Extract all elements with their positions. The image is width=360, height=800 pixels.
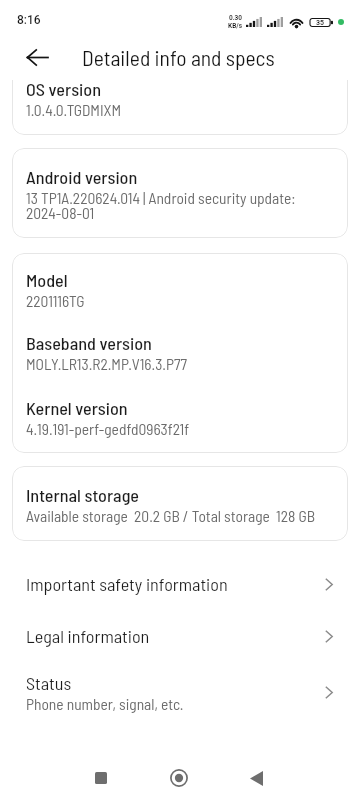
button[interactable]: Legal information	[0, 610, 360, 662]
staticText: 0.30	[229, 14, 243, 22]
staticText: 2201116TG	[26, 291, 85, 310]
staticText: Model	[26, 269, 68, 291]
button[interactable]: Model	[12, 253, 348, 453]
button[interactable]: Status	[0, 662, 360, 722]
button[interactable]: Recent apps	[77, 754, 125, 800]
staticText: MOLY.LR13.R2.MP.V16.3.P77	[26, 354, 187, 373]
staticText: 35	[316, 19, 325, 27]
staticText: Available storage 20.2 GB / Total storag…	[26, 506, 316, 525]
staticText: KB/s	[228, 22, 243, 30]
button[interactable]: Back	[232, 754, 280, 800]
button[interactable]: Internal storage	[12, 466, 348, 541]
button[interactable]: Android version	[12, 148, 348, 238]
staticText: OS version	[26, 80, 101, 100]
staticText: Android version	[26, 166, 138, 188]
staticText: Phone number, signal, etc.	[26, 694, 184, 713]
staticText: Important safety information	[26, 573, 228, 595]
staticText: Baseband version	[26, 332, 152, 354]
button[interactable]: Important safety information	[0, 558, 360, 610]
staticText: Legal information	[26, 625, 150, 647]
button[interactable]: Back	[11, 34, 63, 80]
staticText: 13 TP1A.220624.014 | Android security up…	[26, 188, 296, 222]
staticText: Detailed info and specs	[82, 44, 275, 70]
staticText: Status	[26, 672, 72, 694]
staticText: 4.19.191-perf-gedfd0963f21f	[26, 419, 190, 438]
button[interactable]: OS version	[12, 80, 348, 135]
staticText: 1.0.4.0.TGDMIXM	[26, 100, 122, 119]
staticText: 8:16	[17, 13, 41, 27]
staticText: Kernel version	[26, 397, 128, 419]
staticText: Internal storage	[26, 484, 140, 506]
button[interactable]: Home	[155, 754, 203, 800]
